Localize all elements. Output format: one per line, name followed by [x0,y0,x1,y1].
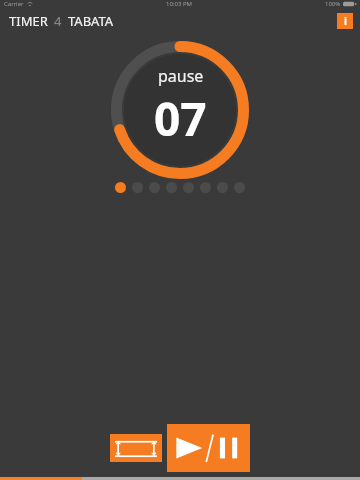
button[interactable]: Round 6 [200,182,211,193]
button[interactable]: Round 8 [234,182,245,193]
staticText: i [344,14,347,28]
staticText: Carrier [4,0,24,8]
button[interactable]: Round 5 [183,182,194,193]
button[interactable]: Adjust interval [110,434,162,462]
staticText: 07 [154,87,207,150]
staticText: 100% [325,0,341,8]
staticText: TIMER [9,12,48,30]
button[interactable]: Round 3 [149,182,160,193]
button[interactable]: Round 1 [115,182,126,193]
staticText: 4 [54,12,62,30]
button[interactable]: Info [337,13,353,29]
staticText: 10:03 PM [166,0,192,8]
button[interactable]: Round 4 [166,182,177,193]
button[interactable]: Play or pause [167,424,250,472]
button[interactable]: Round 7 [217,182,228,193]
staticText: pause [158,65,204,87]
staticText: TABATA [68,12,114,30]
button[interactable]: Round 2 [132,182,143,193]
